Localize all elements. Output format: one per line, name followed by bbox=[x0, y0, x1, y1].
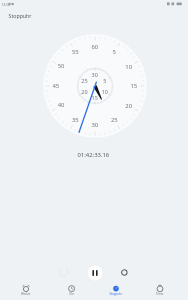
button[interactable]: Uhr bbox=[49, 283, 95, 300]
button[interactable]: Lap bbox=[117, 264, 133, 280]
button[interactable]: Stoppuhr bbox=[95, 283, 141, 300]
button[interactable]: Timer bbox=[141, 283, 185, 300]
button[interactable]: Pause bbox=[87, 265, 103, 281]
button[interactable]: Wecker bbox=[3, 283, 49, 300]
